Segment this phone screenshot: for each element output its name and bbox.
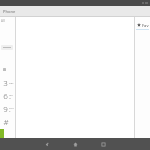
- button[interactable]: #: [0, 115, 15, 128]
- button[interactable]: Back: [40, 138, 54, 150]
- staticText: #: [3, 116, 9, 127]
- staticText: 6: [3, 90, 8, 101]
- button[interactable]: New contact: [1, 45, 13, 50]
- staticText: All: [1, 19, 5, 23]
- button[interactable]: Home: [68, 138, 82, 150]
- staticText: Fav: [142, 23, 149, 28]
- staticText: DEF: [9, 81, 14, 84]
- staticText: 9: [3, 103, 8, 114]
- button[interactable]: 3: [0, 76, 15, 89]
- button[interactable]: Backspace: [0, 63, 15, 76]
- button[interactable]: 9: [0, 102, 15, 115]
- button[interactable]: 6: [0, 89, 15, 102]
- button[interactable]: Fav: [135, 21, 150, 29]
- staticText: 3: [3, 77, 8, 88]
- staticText: MNO: [9, 93, 15, 99]
- button[interactable]: Search contacts: [1, 19, 11, 23]
- staticText: Phone: [3, 9, 16, 14]
- button[interactable]: Recent apps: [96, 138, 110, 150]
- staticText: WXYZ: [9, 106, 15, 112]
- button[interactable]: Phone: [3, 9, 16, 14]
